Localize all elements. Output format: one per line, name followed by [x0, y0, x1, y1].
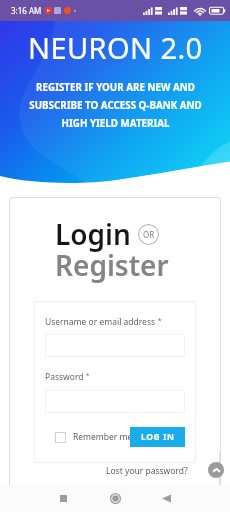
- button[interactable]: LOG IN: [130, 427, 185, 447]
- staticText: REGISTER IF YOUR ARE NEW AND SUBSCRIBE T…: [29, 81, 202, 130]
- staticText: Remember me: [73, 431, 133, 443]
- button[interactable]: Recents: [48, 485, 78, 512]
- button[interactable]: Back: [151, 485, 181, 512]
- button[interactable]: Login: [55, 215, 131, 253]
- staticText: Username or email address: [45, 316, 156, 328]
- button[interactable]: Home: [100, 485, 130, 512]
- staticText: OR: [143, 229, 155, 240]
- button[interactable]: Register: [55, 246, 169, 284]
- staticText: *: [156, 316, 162, 326]
- staticText: NEURON 2.0: [28, 28, 203, 67]
- staticText: 3:16 AM: [11, 5, 42, 16]
- button[interactable]: Scroll to top: [208, 462, 224, 478]
- button[interactable]: Lost your password?: [106, 465, 188, 477]
- button[interactable]: [45, 334, 185, 357]
- staticText: LOG IN: [141, 431, 175, 443]
- button[interactable]: [45, 390, 185, 413]
- staticText: *: [84, 371, 90, 381]
- staticText: Password: [45, 371, 84, 383]
- button[interactable]: Remember me: [55, 431, 133, 443]
